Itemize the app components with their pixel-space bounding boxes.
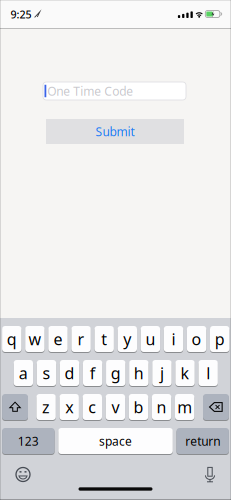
staticText: u xyxy=(145,328,155,350)
staticText: k xyxy=(181,362,190,384)
staticText: b xyxy=(133,396,143,418)
button[interactable]: p xyxy=(0,0,231,500)
button[interactable]: n xyxy=(0,0,231,500)
button[interactable]: x xyxy=(0,0,231,500)
staticText: l xyxy=(206,362,210,384)
button[interactable]: w xyxy=(0,0,231,500)
staticText: r xyxy=(78,328,85,350)
button[interactable]: a xyxy=(0,0,231,500)
button[interactable]: 123 xyxy=(0,0,231,500)
button[interactable] xyxy=(12,463,34,485)
button[interactable]: b xyxy=(0,0,231,500)
staticText: 123 xyxy=(18,433,39,449)
button[interactable]: return xyxy=(0,0,231,500)
staticText: j xyxy=(160,362,164,384)
button[interactable]: space xyxy=(0,0,231,500)
button[interactable]: g xyxy=(0,0,231,500)
staticText: d xyxy=(64,362,74,384)
staticText: space xyxy=(99,433,132,449)
staticText: s xyxy=(42,362,50,384)
staticText: 9:25 xyxy=(10,7,31,21)
staticText: o xyxy=(192,328,202,350)
button[interactable]: z xyxy=(0,0,231,500)
staticText: Submit xyxy=(95,123,134,139)
staticText: p xyxy=(215,328,225,350)
staticText: v xyxy=(111,396,119,418)
staticText: g xyxy=(111,362,121,384)
staticText: x xyxy=(65,396,73,418)
button[interactable]: u xyxy=(0,0,231,500)
staticText: h xyxy=(134,362,144,384)
staticText: t xyxy=(101,328,107,350)
staticText: n xyxy=(157,396,167,418)
button[interactable]: h xyxy=(0,0,231,500)
button[interactable]: r xyxy=(0,0,231,500)
button[interactable]: q xyxy=(0,0,231,500)
staticText: y xyxy=(123,328,131,350)
staticText: One Time Code xyxy=(47,83,133,99)
staticText: m xyxy=(177,396,192,418)
button[interactable] xyxy=(199,463,221,485)
button[interactable]: v xyxy=(0,0,231,500)
button[interactable]: m xyxy=(0,0,231,500)
button[interactable]: Submit xyxy=(46,119,184,144)
button[interactable]: c xyxy=(0,0,231,500)
button[interactable] xyxy=(0,0,231,500)
button[interactable]: e xyxy=(0,0,231,500)
staticText: return xyxy=(185,433,220,449)
staticText: w xyxy=(28,328,41,350)
button[interactable]: f xyxy=(0,0,231,500)
button[interactable] xyxy=(0,0,231,500)
button[interactable]: i xyxy=(0,0,231,500)
staticText: q xyxy=(7,328,17,350)
button[interactable]: s xyxy=(0,0,231,500)
button[interactable]: t xyxy=(0,0,231,500)
staticText: z xyxy=(42,396,50,418)
button[interactable]: d xyxy=(0,0,231,500)
staticText: i xyxy=(171,328,175,350)
staticText: e xyxy=(53,328,62,350)
staticText: f xyxy=(90,362,96,384)
button[interactable]: k xyxy=(0,0,231,500)
button[interactable]: l xyxy=(0,0,231,500)
button[interactable]: y xyxy=(0,0,231,500)
button[interactable]: j xyxy=(0,0,231,500)
button[interactable]: o xyxy=(0,0,231,500)
staticText: c xyxy=(88,396,96,418)
staticText: a xyxy=(19,362,28,384)
